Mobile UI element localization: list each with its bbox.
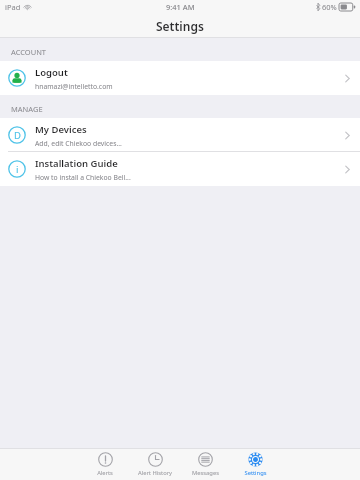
staticText: MANAGE xyxy=(11,104,43,114)
button[interactable]: Settings xyxy=(230,449,280,480)
button[interactable]: Logout xyxy=(0,61,360,95)
staticText: Settings xyxy=(244,469,267,477)
staticText: How to install a Chiekoo Bell... xyxy=(35,173,131,182)
staticText: Add, edit Chiekoo devices... xyxy=(35,139,122,148)
staticText: ACCOUNT xyxy=(11,47,47,57)
staticText: iPad xyxy=(5,2,21,12)
staticText: Logout xyxy=(35,66,68,79)
button[interactable]: Messages xyxy=(180,449,230,480)
staticText: hnamazi@intelletto.com xyxy=(35,82,113,91)
staticText: 9:41 AM xyxy=(166,2,195,12)
staticText: My Devices xyxy=(35,123,87,136)
button[interactable]: Alert History xyxy=(130,449,180,480)
staticText: i xyxy=(16,163,19,176)
staticText: Installation Guide xyxy=(35,157,118,170)
staticText: Messages xyxy=(192,469,219,477)
staticText: Alerts xyxy=(97,469,113,477)
button[interactable]: i xyxy=(0,152,360,186)
button[interactable]: D xyxy=(0,118,360,152)
staticText: D xyxy=(14,129,21,142)
staticText: 60% xyxy=(322,2,337,12)
staticText: Settings xyxy=(156,18,204,34)
button[interactable]: Alerts xyxy=(80,449,130,480)
staticText: Alert History xyxy=(138,469,172,477)
